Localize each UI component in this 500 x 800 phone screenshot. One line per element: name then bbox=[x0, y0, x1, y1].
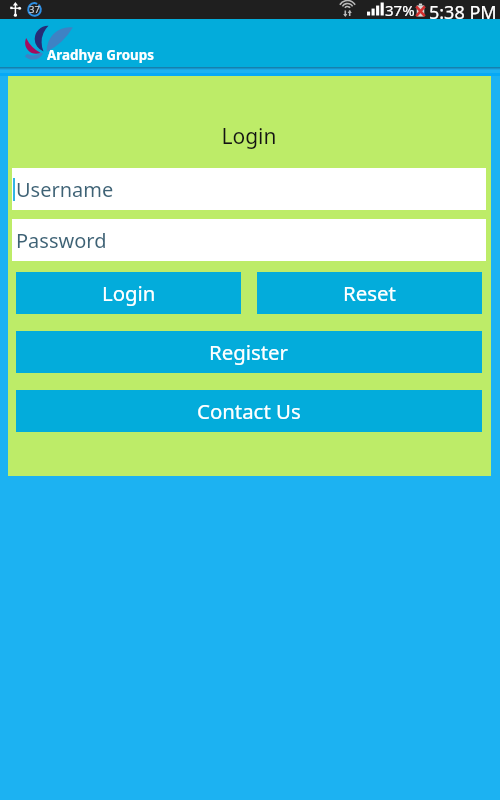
staticText: Contact Us bbox=[197, 397, 301, 425]
staticText: Register bbox=[209, 338, 289, 366]
button[interactable]: Reset bbox=[257, 272, 482, 314]
button[interactable]: Login bbox=[16, 272, 241, 314]
staticText: 37 bbox=[29, 3, 40, 16]
button[interactable]: Password bbox=[12, 219, 486, 261]
staticText: Aradhya Groups bbox=[47, 46, 154, 64]
button[interactable]: Username bbox=[12, 168, 486, 210]
staticText: 5:38 PM bbox=[429, 0, 497, 19]
other: Aradhya Groups logo bbox=[0, 19, 500, 67]
staticText: Login bbox=[102, 279, 156, 307]
staticText: Username bbox=[16, 176, 114, 203]
staticText: Login bbox=[12, 122, 486, 151]
staticText: Password bbox=[16, 227, 107, 254]
button[interactable]: Register bbox=[16, 331, 482, 373]
staticText: 37% bbox=[385, 0, 415, 19]
staticText: Reset bbox=[343, 279, 396, 307]
button[interactable]: Contact Us bbox=[16, 390, 482, 432]
